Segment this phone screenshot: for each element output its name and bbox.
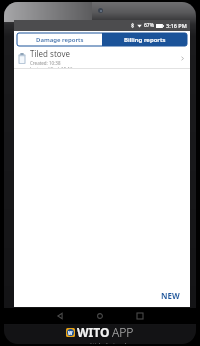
- staticText: W: [68, 330, 73, 336]
- staticText: 3:16 PM: [166, 22, 187, 29]
- staticText: NEW: [161, 290, 180, 301]
- staticText: Last modified: 15:16: [30, 66, 73, 68]
- staticText: www.wittich-design.de: [71, 341, 130, 344]
- staticText: WITO: [77, 324, 110, 340]
- button[interactable]: Tiled stove: [14, 48, 190, 68]
- button[interactable]: Recent apps: [129, 308, 151, 324]
- staticText: 67%: [144, 22, 154, 29]
- staticText: APP: [112, 324, 134, 340]
- staticText: Billing reports: [124, 36, 166, 44]
- button[interactable]: Home: [89, 308, 111, 324]
- button[interactable]: Back: [49, 308, 71, 324]
- staticText: Created: 10:38: [30, 60, 61, 66]
- staticText: Tiled stove: [30, 48, 71, 59]
- button[interactable]: Billing reports: [102, 33, 187, 46]
- other: Open report: [178, 54, 186, 62]
- button[interactable]: Damage reports: [17, 33, 102, 46]
- button[interactable]: NEW: [151, 284, 190, 307]
- staticText: Damage reports: [36, 36, 84, 44]
